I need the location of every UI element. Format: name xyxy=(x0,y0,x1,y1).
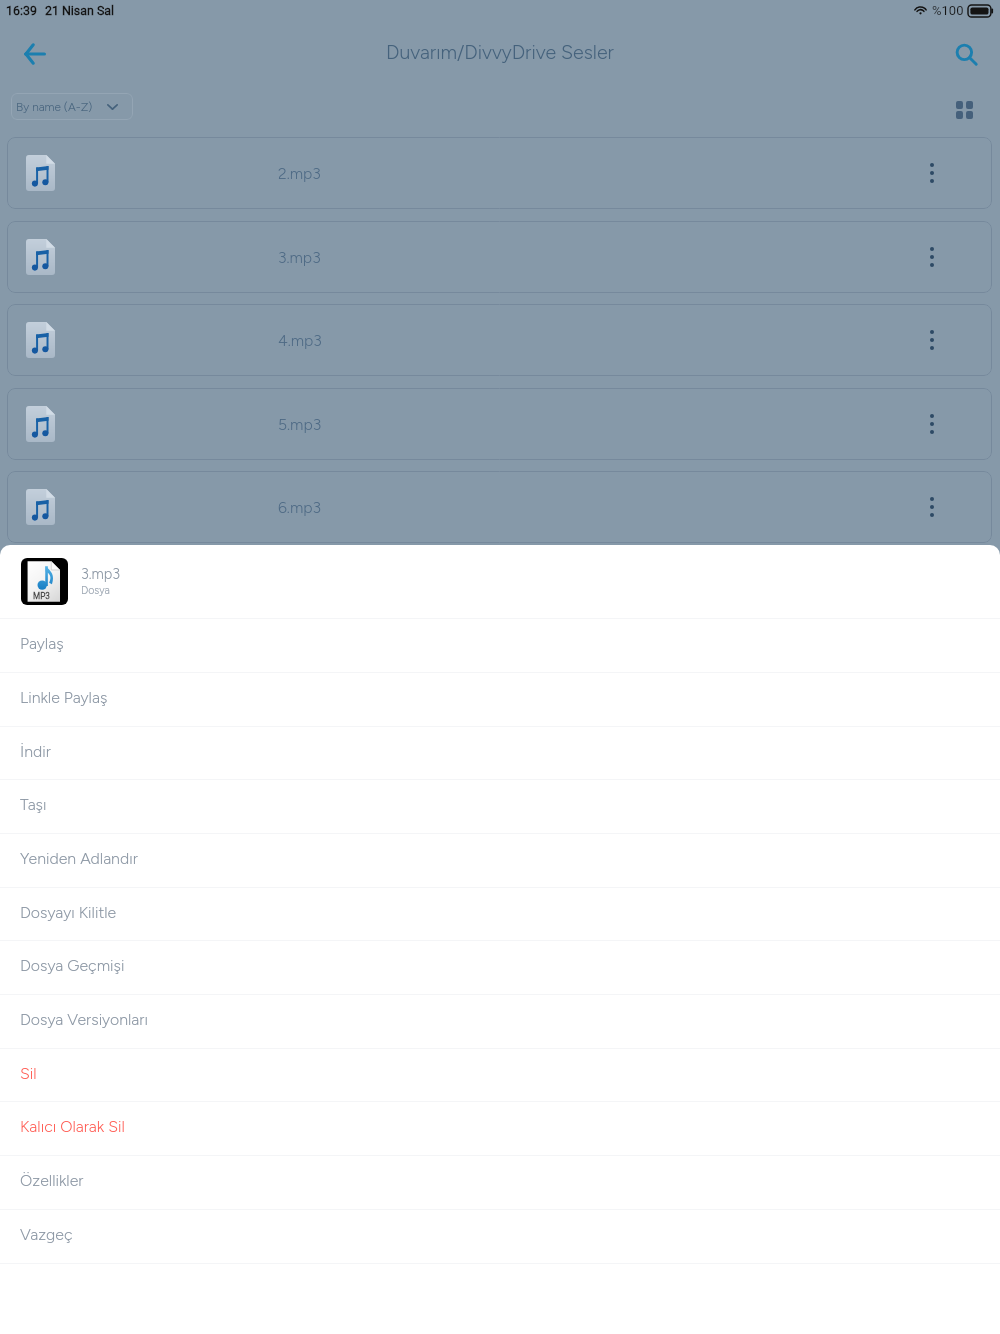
staticText: Dosya xyxy=(81,584,110,597)
staticText: Duvarım/DivvyDrive Sesler xyxy=(386,40,614,64)
staticText: Sil xyxy=(20,1064,37,1083)
staticText: 16:39 xyxy=(6,3,37,18)
button[interactable]: İndir xyxy=(0,727,1000,780)
button[interactable]: Kalıcı Olarak Sil xyxy=(0,1102,1000,1155)
button[interactable]: Dosyayı Kilitle xyxy=(0,888,1000,941)
button[interactable]: Taşı xyxy=(0,780,1000,833)
button[interactable]: Grid view xyxy=(946,92,982,128)
button[interactable]: More options xyxy=(915,323,949,357)
staticText: 3.mp3 xyxy=(81,565,121,582)
button[interactable]: Vazgeç xyxy=(0,1210,1000,1263)
staticText: 21 Nisan Sal xyxy=(45,3,115,18)
button[interactable]: Dosya Versiyonları xyxy=(0,995,1000,1048)
button[interactable]: 3.mp3 xyxy=(7,221,992,293)
staticText: Taşı xyxy=(20,795,47,814)
button[interactable]: 5.mp3 xyxy=(7,388,992,460)
staticText: 6.mp3 xyxy=(278,498,321,517)
staticText: Linkle Paylaş xyxy=(20,688,108,707)
button[interactable]: Sil xyxy=(0,1049,1000,1102)
button[interactable]: Linkle Paylaş xyxy=(0,673,1000,726)
button[interactable]: Search xyxy=(943,31,991,79)
button[interactable]: 4.mp3 xyxy=(7,304,992,376)
button[interactable]: Yeniden Adlandır xyxy=(0,834,1000,887)
staticText: Vazgeç xyxy=(20,1225,73,1244)
staticText: İndir xyxy=(20,742,51,761)
staticText: Dosya Versiyonları xyxy=(20,1010,148,1029)
staticText: Özellikler xyxy=(20,1171,84,1190)
button[interactable]: Özellikler xyxy=(0,1156,1000,1209)
button[interactable]: More options xyxy=(915,156,949,190)
staticText: 3.mp3 xyxy=(278,248,321,267)
staticText: 2.mp3 xyxy=(278,164,321,183)
staticText: By name (A-Z) xyxy=(16,100,93,114)
button[interactable]: Paylaş xyxy=(0,619,1000,672)
staticText: 4.mp3 xyxy=(278,331,322,350)
button[interactable]: 2.mp3 xyxy=(7,137,992,209)
button[interactable]: By name (A-Z) xyxy=(11,93,133,120)
staticText: MP3 xyxy=(33,591,50,601)
staticText: %100 xyxy=(932,3,964,18)
staticText: Dosyayı Kilitle xyxy=(20,903,117,922)
staticText: 5.mp3 xyxy=(278,415,322,434)
staticText: Dosya Geçmişi xyxy=(20,956,125,975)
button[interactable]: More options xyxy=(915,407,949,441)
staticText: Yeniden Adlandır xyxy=(20,849,138,868)
button[interactable]: Back xyxy=(11,30,59,78)
staticText: Paylaş xyxy=(20,634,64,653)
staticText: Kalıcı Olarak Sil xyxy=(20,1117,125,1136)
button[interactable]: Dosya Geçmişi xyxy=(0,941,1000,994)
button[interactable]: More options xyxy=(915,490,949,524)
button[interactable]: More options xyxy=(915,240,949,274)
button[interactable]: 6.mp3 xyxy=(7,471,992,543)
